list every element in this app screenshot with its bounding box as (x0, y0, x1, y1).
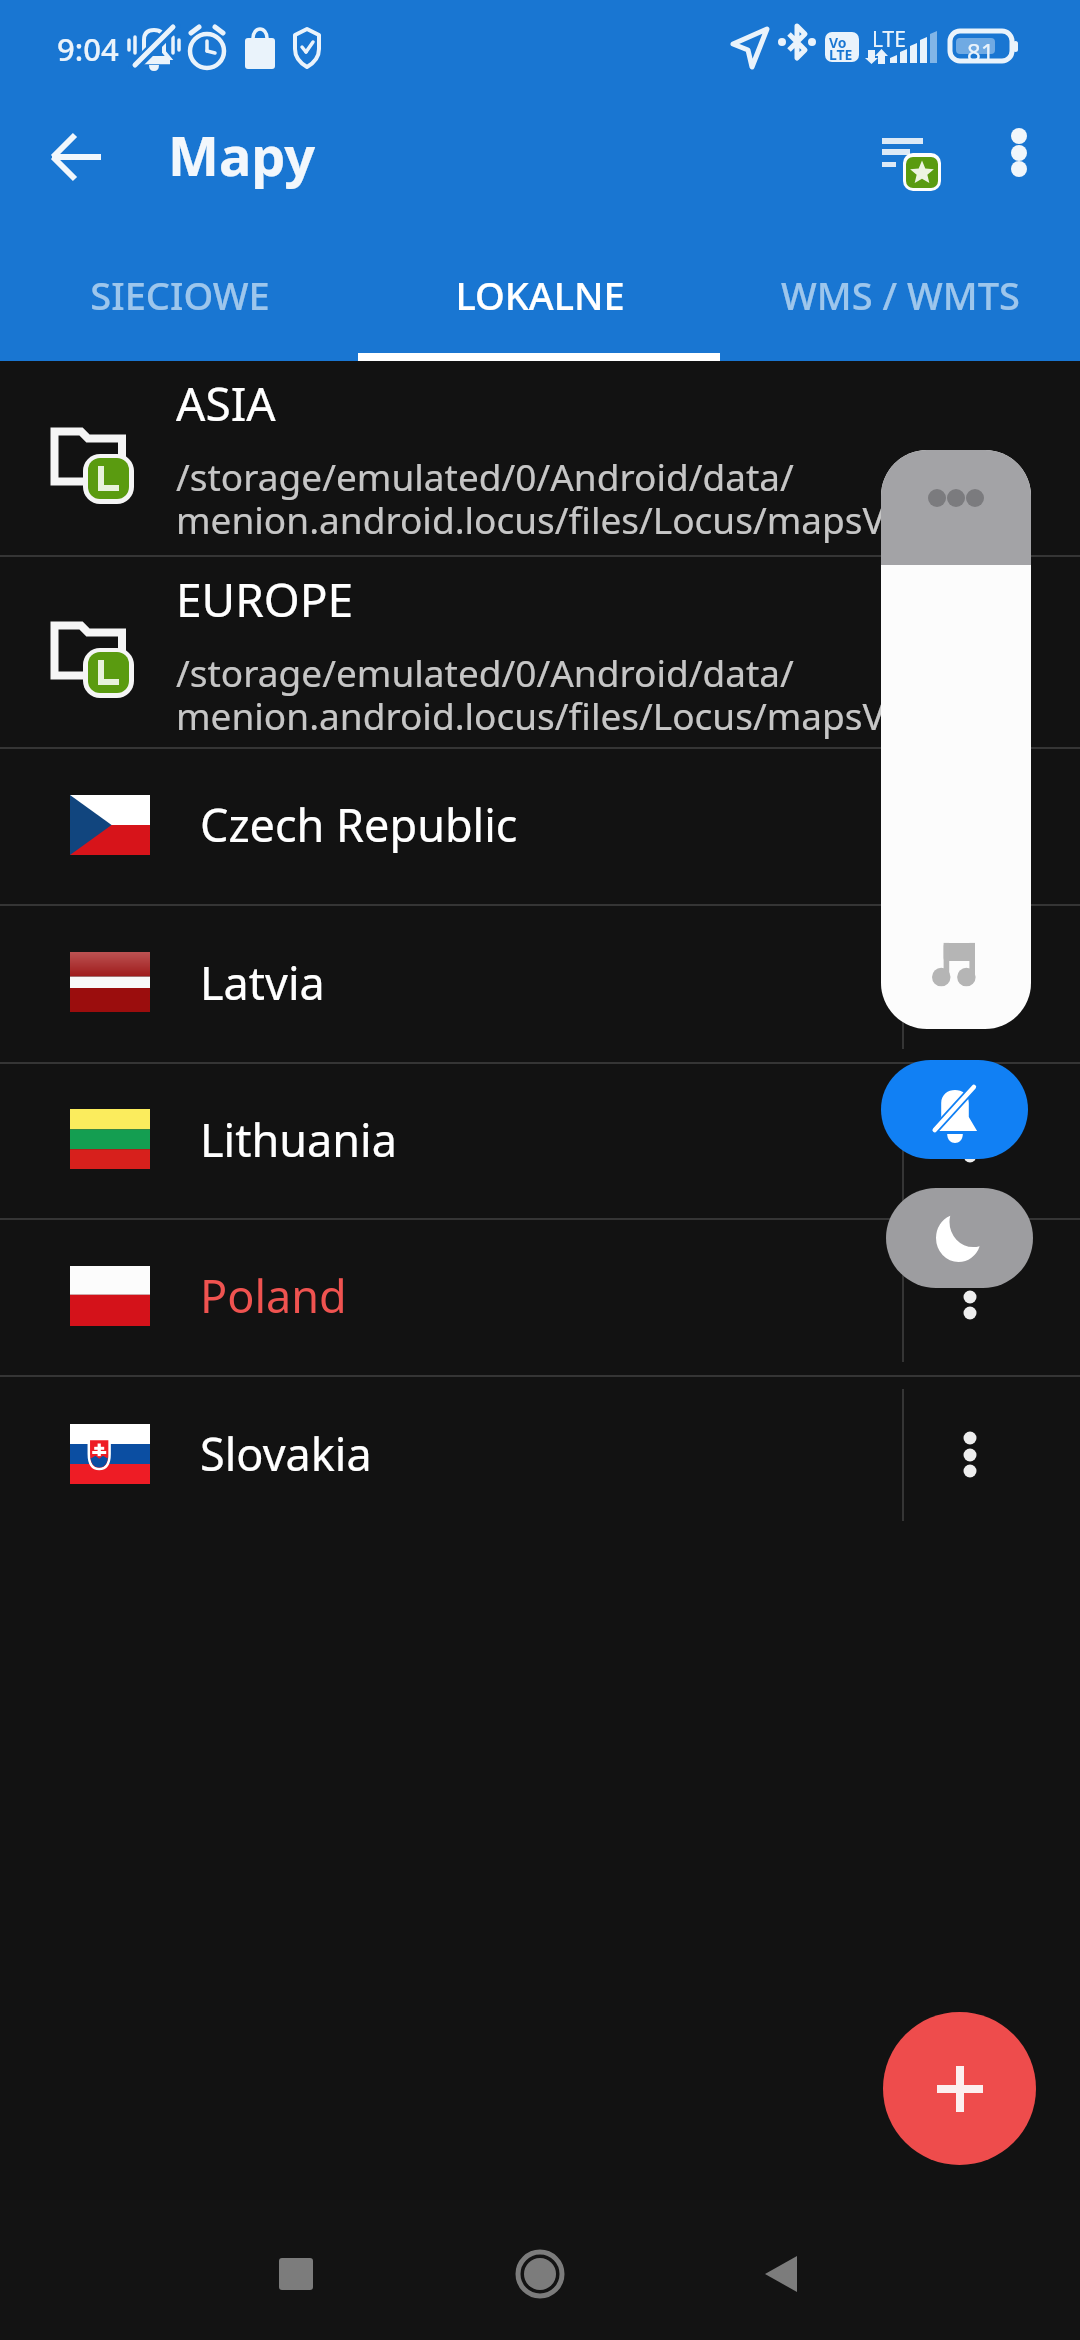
staticText: /storage/emulated/0/Android/data/ menion… (176, 451, 885, 545)
staticText: 9:04 (57, 28, 119, 70)
button[interactable]: Map options (920, 1220, 1020, 1375)
button[interactable]: Map options (920, 1064, 1020, 1218)
staticText: Mapy (168, 118, 316, 192)
button[interactable]: Saved maps (852, 100, 972, 220)
staticText: Latvia (200, 952, 325, 1013)
button[interactable]: Volume slider (881, 450, 1031, 1029)
button[interactable]: Map options (920, 1377, 1020, 1534)
staticText: LTE (829, 45, 853, 64)
button[interactable]: Czech Republic (0, 749, 1080, 904)
staticText: WMS / WMTS (781, 269, 1020, 321)
button[interactable]: ASIA (0, 361, 1080, 555)
staticText: LTE (872, 25, 906, 54)
staticText: Poland (200, 1265, 347, 1326)
staticText: Vo (829, 33, 847, 52)
button[interactable]: Latvia (0, 906, 1080, 1062)
button[interactable]: Map options (920, 906, 1020, 1062)
button[interactable]: Add map (883, 2012, 1036, 2165)
staticText: SIECIOWE (90, 269, 270, 321)
button[interactable]: Poland (0, 1220, 1080, 1375)
staticText: Slovakia (200, 1423, 372, 1484)
button[interactable]: Recent apps (236, 2200, 356, 2340)
staticText: Lithuania (200, 1109, 397, 1170)
button[interactable]: WMS / WMTS (720, 230, 1080, 361)
button[interactable]: Slovakia (0, 1377, 1080, 1534)
button[interactable]: Back (721, 2200, 841, 2340)
button[interactable]: LOKALNE (360, 230, 720, 361)
button[interactable]: Mute (881, 1060, 1028, 1159)
button[interactable]: Home (480, 2200, 600, 2340)
button[interactable]: More options (963, 100, 1075, 230)
staticText: 81 (967, 35, 995, 68)
button[interactable]: EUROPE (0, 557, 1080, 747)
button[interactable]: SIECIOWE (0, 230, 360, 361)
staticText: ASIA (176, 372, 276, 435)
staticText: Czech Republic (200, 794, 518, 855)
button[interactable]: Back (30, 109, 126, 205)
staticText: /storage/emulated/0/Android/data/ menion… (176, 647, 885, 741)
staticText: LOKALNE (455, 269, 625, 321)
button[interactable]: Do not disturb (886, 1188, 1033, 1288)
button[interactable]: Lithuania (0, 1064, 1080, 1218)
staticText: EUROPE (176, 568, 354, 631)
